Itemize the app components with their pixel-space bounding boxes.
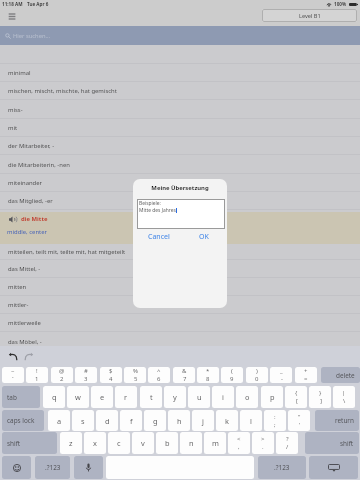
button[interactable]: shift xyxy=(305,432,359,454)
staticText: v xyxy=(141,438,145,448)
button[interactable]: y xyxy=(164,386,186,408)
button[interactable]: delete xyxy=(321,367,360,383)
button[interactable]: @ xyxy=(51,367,73,383)
button[interactable]: r xyxy=(115,386,137,408)
button[interactable]: d xyxy=(96,410,118,431)
staticText: ) xyxy=(256,367,258,375)
button[interactable]: q xyxy=(43,386,65,408)
button[interactable]: i xyxy=(212,386,234,408)
button[interactable]: mitteilen, teilt mit, teilte mit, hat mi… xyxy=(0,244,360,260)
button[interactable]: s xyxy=(72,410,94,431)
button[interactable]: b xyxy=(156,432,178,454)
button[interactable]: Redo xyxy=(24,352,34,361)
button[interactable]: u xyxy=(188,386,210,408)
button[interactable]: Hide keyboard xyxy=(309,456,358,479)
staticText: . xyxy=(262,443,264,451)
button[interactable]: } xyxy=(309,386,331,408)
staticText: ~ xyxy=(11,367,15,375)
staticText: ] xyxy=(320,397,322,405)
button[interactable]: > xyxy=(252,432,274,454)
button[interactable]: % xyxy=(124,367,146,383)
button[interactable]: ! xyxy=(26,367,48,383)
button[interactable]: z xyxy=(60,432,82,454)
button[interactable]: w xyxy=(67,386,89,408)
button[interactable]: g xyxy=(144,410,166,431)
button[interactable]: & xyxy=(173,367,195,383)
button[interactable]: das Mitglied, -er xyxy=(0,192,360,210)
staticText: 1 xyxy=(35,375,39,383)
button[interactable]: Menu xyxy=(6,10,18,22)
staticText: mitten xyxy=(8,283,27,291)
button[interactable]: caps lock xyxy=(2,410,44,431)
staticText: n xyxy=(189,438,194,448)
button[interactable]: Play pronunciation xyxy=(0,212,360,244)
button[interactable]: l xyxy=(240,410,262,431)
button[interactable]: die Mitarbeiterin, -nen xyxy=(0,156,360,174)
button[interactable]: shift xyxy=(2,432,57,454)
staticText: < xyxy=(237,435,241,443)
button[interactable]: v xyxy=(132,432,154,454)
button[interactable]: : xyxy=(264,410,286,431)
button[interactable]: ) xyxy=(246,367,268,383)
button[interactable]: ( xyxy=(221,367,243,383)
staticText: ` xyxy=(12,375,14,383)
staticText: ' xyxy=(299,421,301,429)
button[interactable]: Emoji xyxy=(2,456,31,479)
staticText: h xyxy=(177,416,182,426)
button[interactable]: t xyxy=(140,386,162,408)
button[interactable]: miss- xyxy=(0,101,360,119)
button[interactable]: tab xyxy=(2,386,40,408)
staticText: " xyxy=(298,413,301,421)
button[interactable]: f xyxy=(120,410,142,431)
button[interactable]: j xyxy=(192,410,214,431)
button[interactable]: ? xyxy=(276,432,298,454)
button[interactable]: ^ xyxy=(148,367,170,383)
button[interactable]: x xyxy=(84,432,106,454)
button[interactable]: ~ xyxy=(2,367,24,383)
button[interactable]: mit xyxy=(0,119,360,137)
button[interactable]: " xyxy=(288,410,310,431)
button[interactable]: minimal xyxy=(0,64,360,82)
button[interactable]: k xyxy=(216,410,238,431)
button[interactable]: o xyxy=(236,386,258,408)
staticText: miteinander xyxy=(8,179,42,187)
staticText: l xyxy=(250,416,252,426)
button[interactable]: m xyxy=(204,432,226,454)
button[interactable]: | xyxy=(333,386,355,408)
button[interactable]: $ xyxy=(100,367,122,383)
button[interactable]: .?123 xyxy=(35,456,70,479)
button[interactable]: e xyxy=(91,386,113,408)
button[interactable]: das Möbel, - xyxy=(0,333,360,351)
button[interactable]: Undo xyxy=(8,352,18,361)
staticText: q xyxy=(52,392,57,402)
button[interactable]: + xyxy=(295,367,317,383)
button[interactable]: mittlerweile xyxy=(0,314,360,332)
button[interactable]: Level B1 xyxy=(262,9,357,22)
button[interactable]: mitten xyxy=(0,278,360,296)
staticText: 3 xyxy=(84,375,88,383)
button[interactable]: a xyxy=(48,410,70,431)
button[interactable]: Dictate xyxy=(74,456,103,479)
staticText: shift xyxy=(7,439,21,448)
button[interactable]: return xyxy=(315,410,359,431)
button[interactable]: # xyxy=(75,367,97,383)
button[interactable]: mischen, mischt, mischte, hat gemischt xyxy=(0,82,360,100)
staticText: c xyxy=(117,438,121,448)
button[interactable]: < xyxy=(228,432,250,454)
button[interactable]: { xyxy=(285,386,307,408)
button[interactable]: das Mittel, - xyxy=(0,260,360,278)
button[interactable]: * xyxy=(197,367,219,383)
button[interactable]: .?123 xyxy=(258,456,306,479)
button[interactable]: h xyxy=(168,410,190,431)
staticText: minimal xyxy=(8,69,31,77)
button[interactable]: der Mitarbeiter, - xyxy=(0,137,360,155)
button[interactable]: p xyxy=(261,386,283,408)
button[interactable]: Cancel xyxy=(141,231,176,243)
button[interactable]: miteinander xyxy=(0,174,360,192)
button[interactable]: mittler- xyxy=(0,296,360,314)
button[interactable]: n xyxy=(180,432,202,454)
button[interactable]: c xyxy=(108,432,130,454)
button[interactable]: _ xyxy=(270,367,292,383)
button[interactable]: OK xyxy=(186,231,221,243)
